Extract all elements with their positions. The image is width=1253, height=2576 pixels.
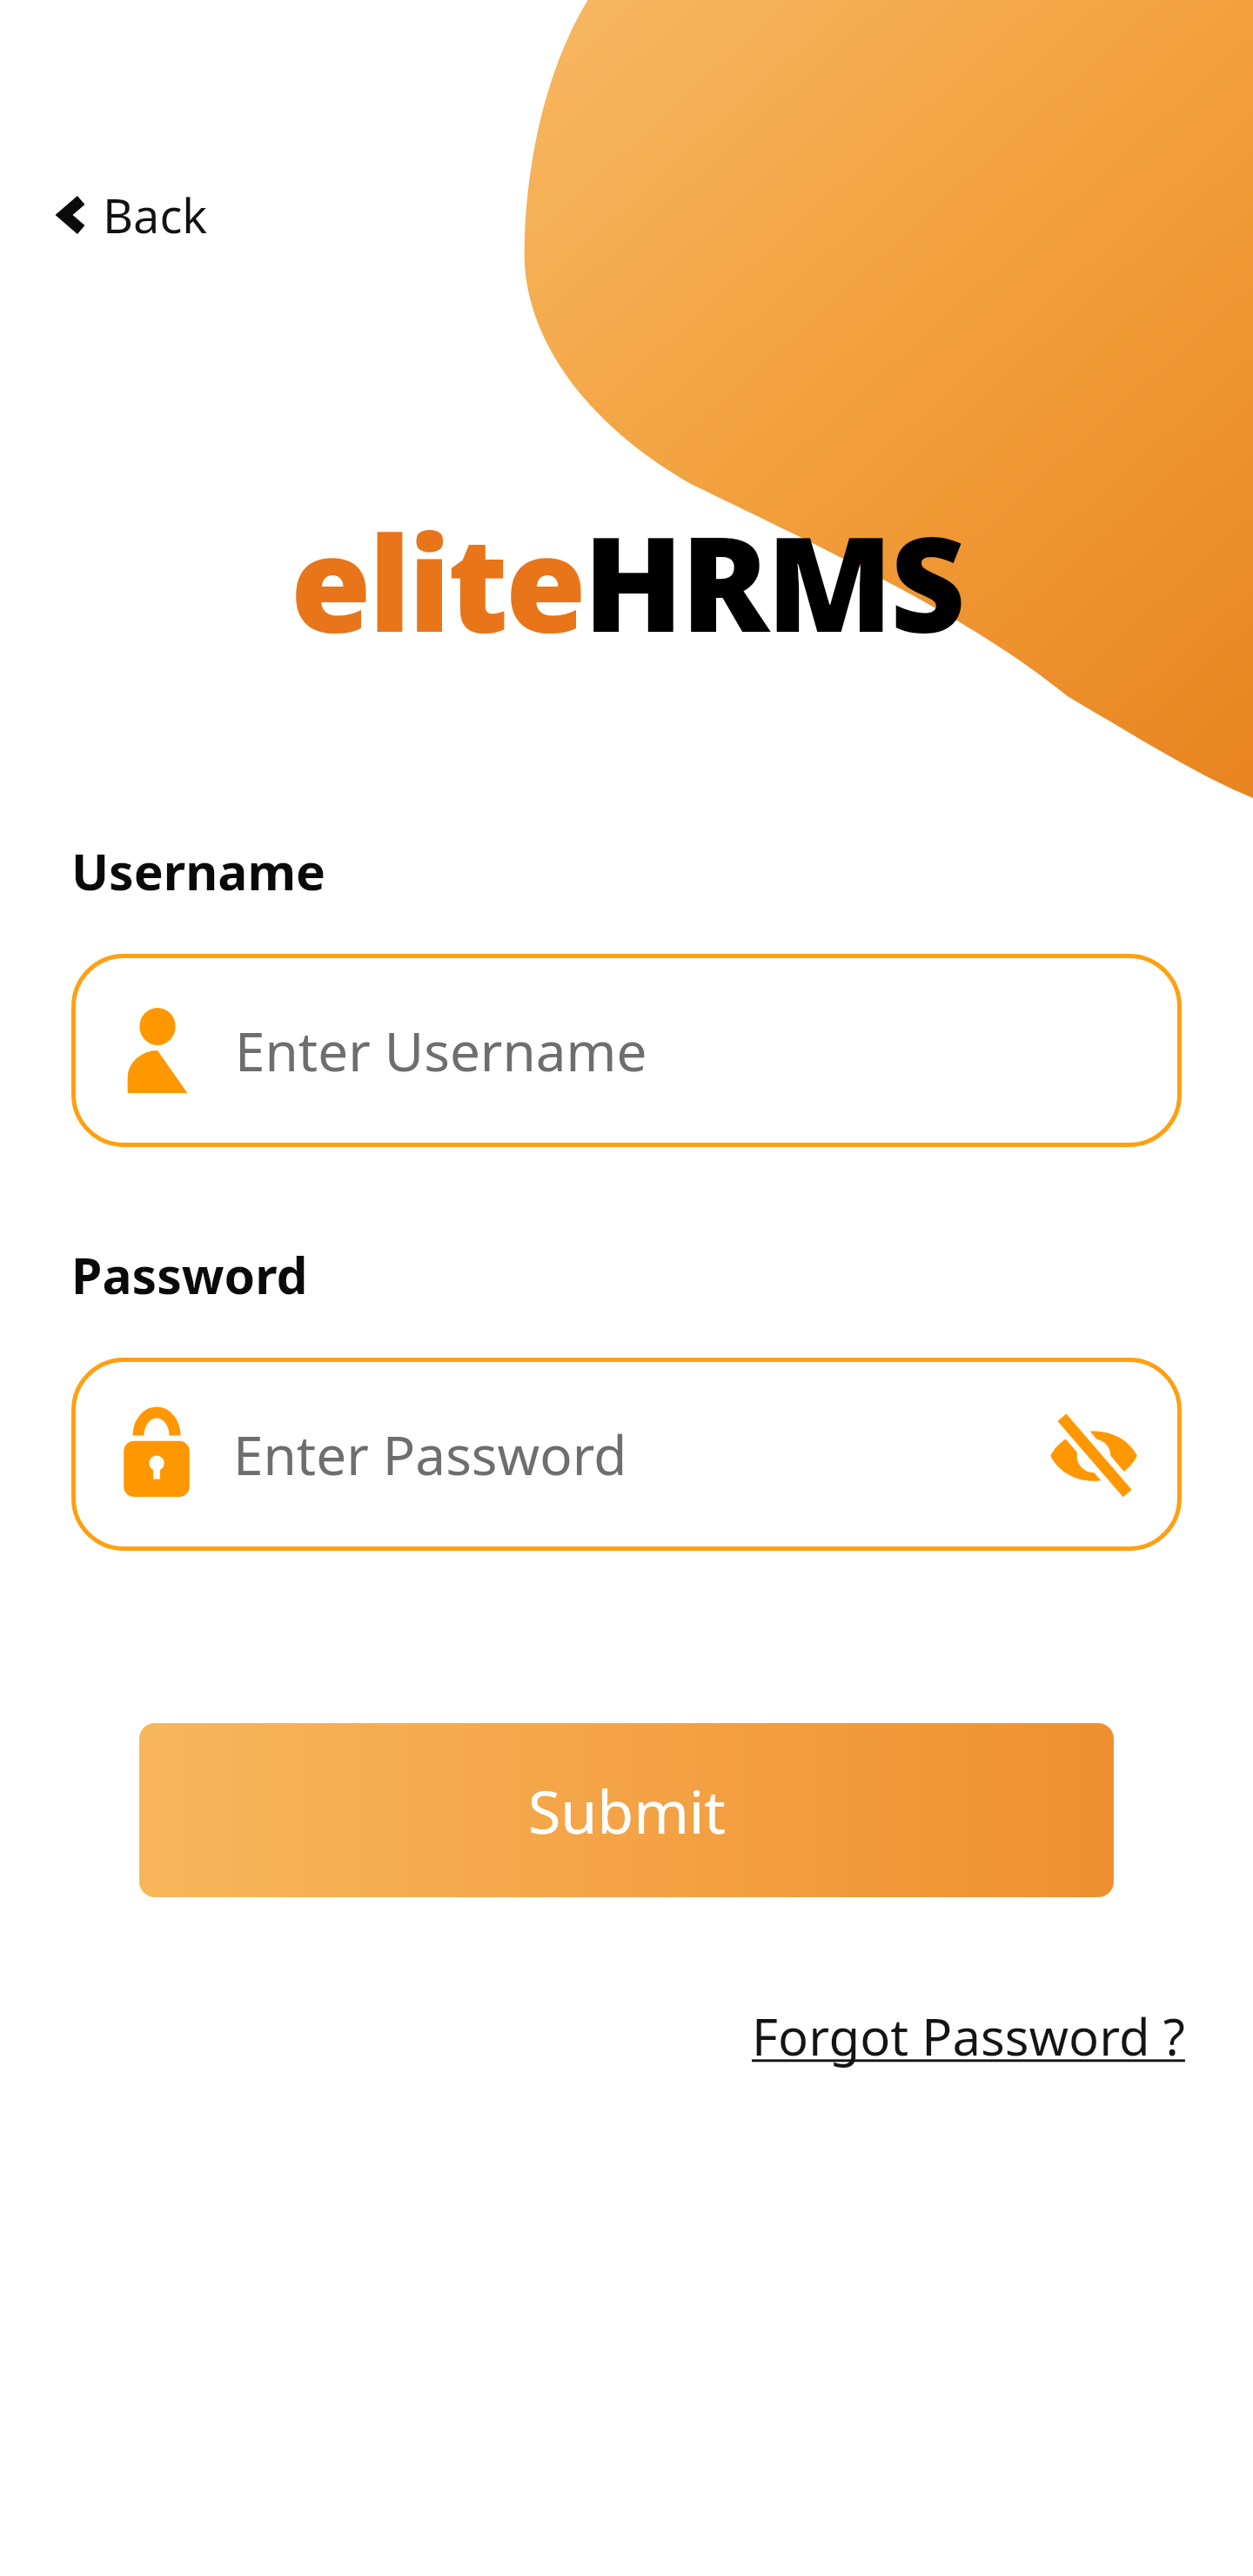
button[interactable]: Forgot Password ? (745, 1995, 1192, 2077)
staticText: Forgot Password ? (752, 2002, 1185, 2070)
staticText: Back (103, 183, 208, 247)
staticText: Submit (528, 1770, 726, 1851)
button[interactable]: Submit (139, 1723, 1114, 1897)
button[interactable]: Show password (1029, 1389, 1159, 1519)
staticText: Username (71, 837, 326, 905)
staticText: Password (71, 1241, 308, 1309)
staticText: Enter Username (235, 1014, 647, 1087)
button[interactable]: Enter Password (71, 1358, 1182, 1551)
button[interactable]: Back (42, 171, 224, 259)
button[interactable]: Enter Username (71, 954, 1182, 1147)
staticText: Enter Password (233, 1418, 627, 1491)
staticText: eliteHRMS (291, 493, 963, 670)
